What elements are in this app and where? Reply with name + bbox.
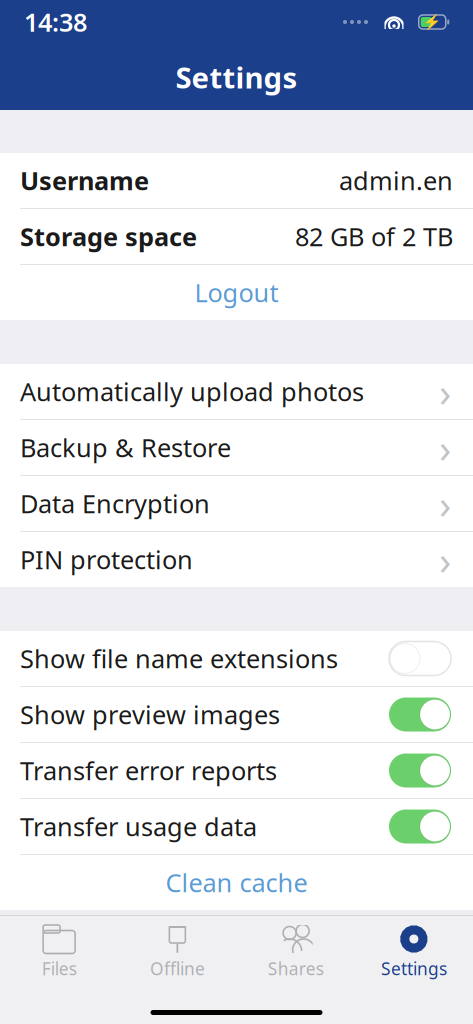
button[interactable]: Show preview images (0, 687, 473, 742)
button[interactable]: Settings (355, 916, 473, 986)
staticText: Storage space (20, 220, 197, 253)
staticText: 14:38 (24, 5, 87, 39)
staticText: Show file name extensions (20, 642, 338, 675)
staticText: › (439, 477, 451, 530)
staticText: Files (42, 957, 77, 980)
button[interactable]: Backup & Restore (0, 420, 473, 475)
staticText: Settings (381, 957, 447, 980)
button[interactable]: Show file name extensions (0, 631, 473, 686)
button[interactable]: Files (0, 916, 118, 986)
button[interactable]: Logout (0, 265, 473, 320)
button[interactable]: Clean cache (0, 855, 473, 910)
staticText: Clean cache (165, 866, 307, 899)
button[interactable]: Shares (236, 916, 355, 986)
staticText: Backup & Restore (20, 431, 231, 464)
staticText: PIN protection (20, 543, 193, 576)
button[interactable]: Offline (118, 916, 236, 986)
button[interactable]: Transfer usage data (0, 799, 473, 854)
staticText: admin.en (339, 164, 453, 197)
staticText: Show preview images (20, 698, 280, 731)
staticText: Transfer usage data (20, 810, 257, 843)
staticText: Settings (175, 57, 297, 96)
staticText: Transfer error reports (20, 754, 277, 787)
button[interactable]: Data Encryption (0, 476, 473, 531)
staticText: ⚡ (423, 14, 441, 30)
staticText: Username (20, 164, 149, 197)
staticText: › (439, 533, 451, 586)
staticText: › (439, 421, 451, 474)
staticText: Automatically upload photos (20, 375, 364, 408)
staticText: Offline (150, 957, 205, 980)
staticText: Logout (194, 276, 278, 309)
staticText: Shares (268, 957, 324, 980)
button[interactable]: Automatically upload photos (0, 364, 473, 419)
staticText: Data Encryption (20, 487, 210, 520)
button[interactable]: Transfer error reports (0, 743, 473, 798)
staticText: 82 GB of 2 TB (295, 220, 453, 253)
button[interactable]: PIN protection (0, 532, 473, 587)
staticText: › (439, 365, 451, 418)
